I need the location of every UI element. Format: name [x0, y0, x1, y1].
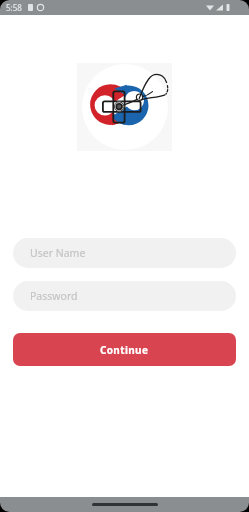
button[interactable]: User Name	[13, 238, 236, 268]
staticText: Continue	[100, 343, 149, 357]
button[interactable]: Password	[13, 281, 236, 311]
staticText: Password	[30, 289, 78, 303]
button[interactable]: Continue	[13, 333, 236, 366]
staticText: User Name	[30, 246, 86, 260]
staticText: 5:58	[6, 2, 22, 13]
